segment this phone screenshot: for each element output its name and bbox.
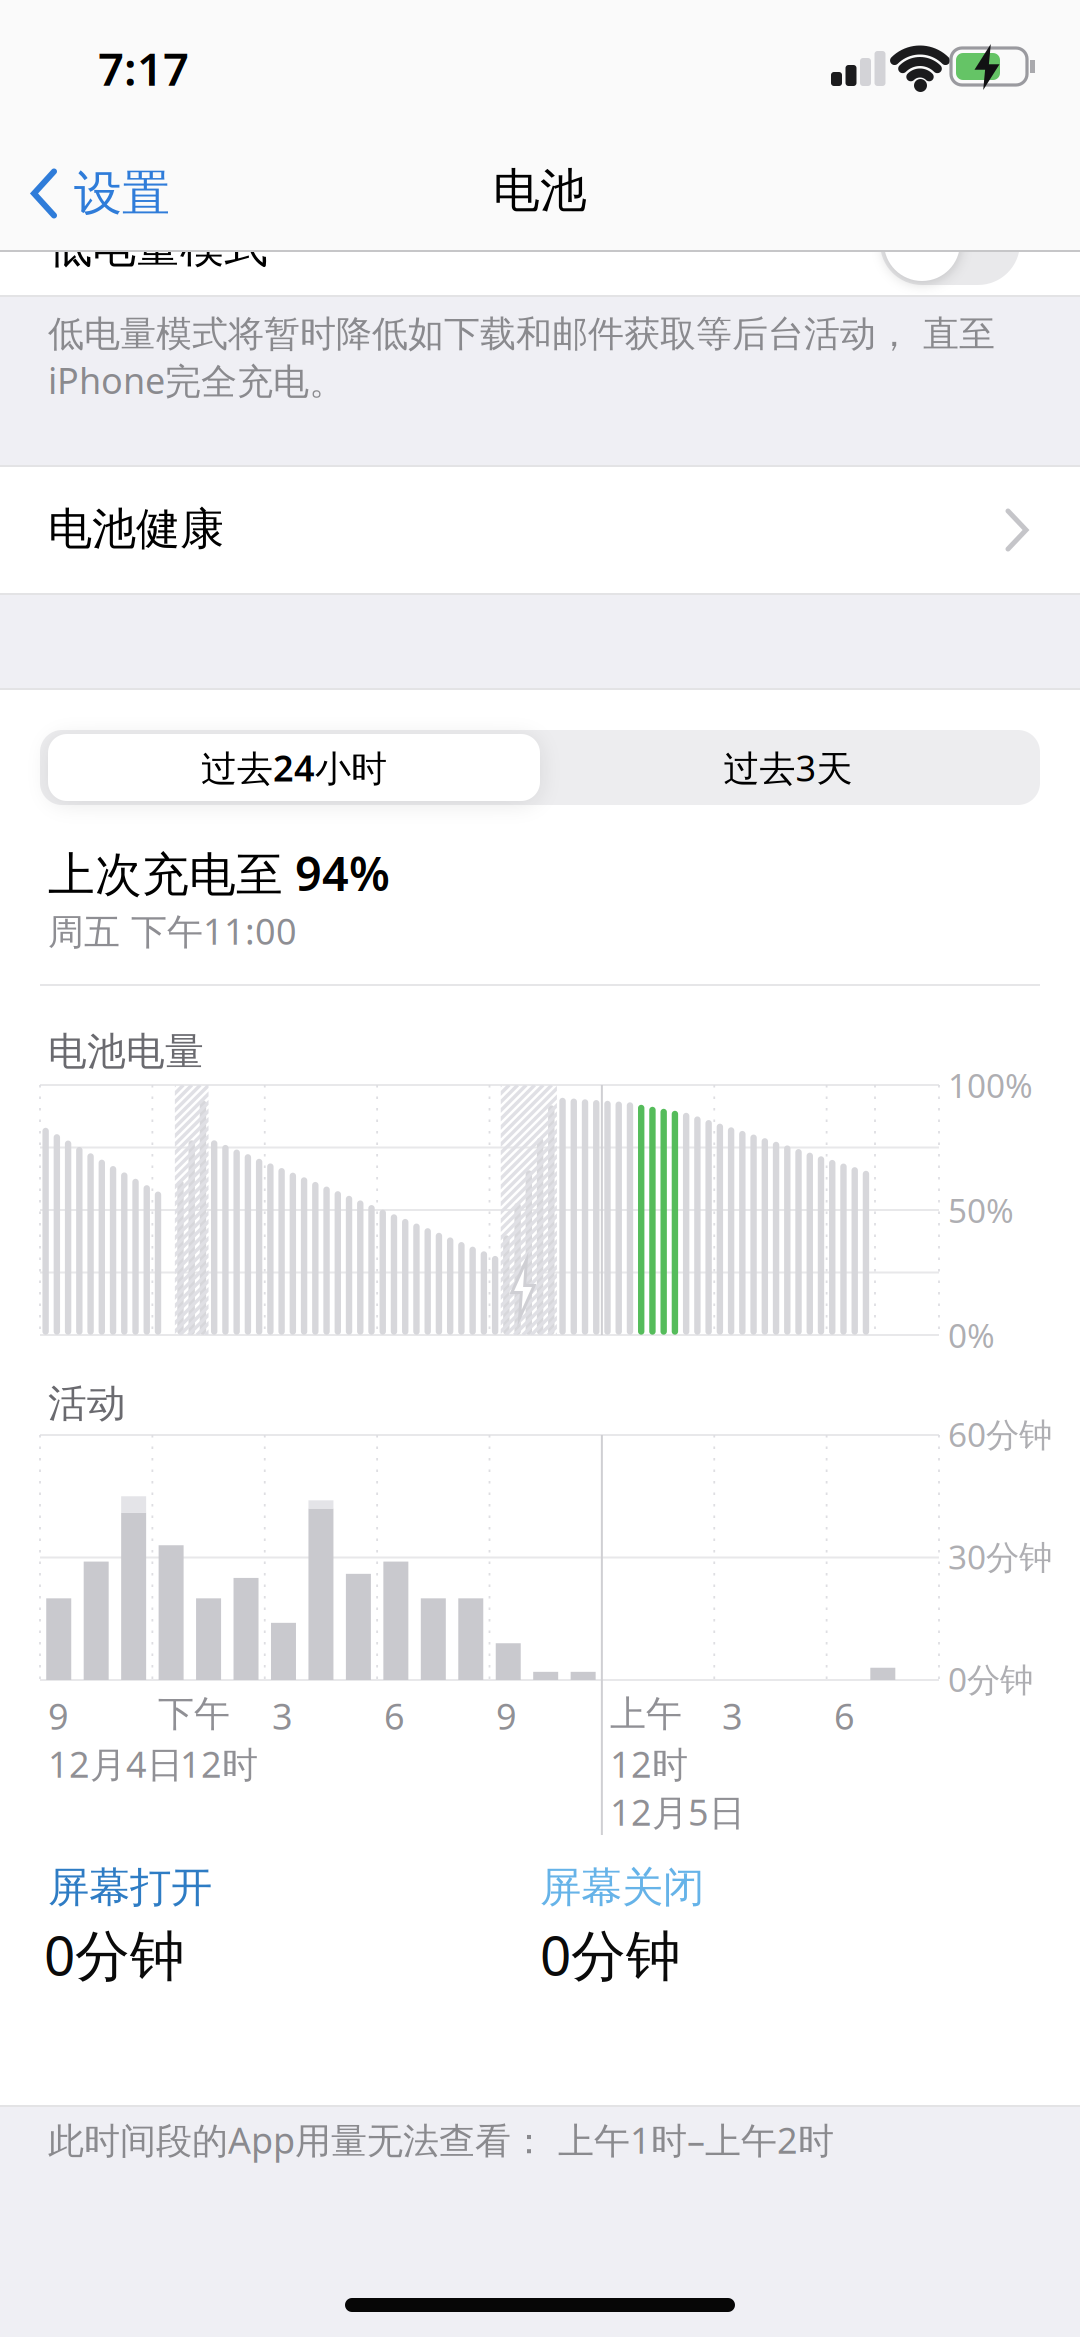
button[interactable]: 设置 (30, 164, 170, 223)
staticText: 上次充电至 94% (48, 842, 390, 904)
staticText: 电池健康 (48, 502, 224, 556)
staticText: 过去24小时 (201, 744, 387, 791)
staticText: 6 (384, 1692, 405, 1740)
staticText: 7:17 (98, 38, 189, 98)
staticText: 过去3天 (723, 744, 852, 791)
staticText: 上午 (610, 1692, 682, 1736)
button[interactable]: 电池健康 (0, 467, 1080, 593)
staticText: 低电量模式 (48, 220, 268, 274)
staticText: 此时间段的App用量无法查看： 上午1时–上午2时 (48, 2116, 834, 2164)
staticText: 0分钟 (948, 1657, 1033, 1701)
staticText: 6 (834, 1692, 855, 1740)
staticText: 12月4日 (48, 1740, 183, 1788)
staticText: 0分钟 (44, 1918, 185, 1991)
staticText: 60分钟 (948, 1412, 1052, 1456)
button[interactable]: 低电量模式 (0, 252, 1080, 295)
staticText: 0% (948, 1313, 995, 1357)
staticText: 30分钟 (948, 1534, 1052, 1579)
staticText: 3 (722, 1692, 743, 1740)
staticText: 低电量模式将暂时降低如下载和邮件获取等后台活动， 直至 iPhone完全充电。 (48, 312, 995, 404)
staticText: 屏幕打开 (48, 1862, 212, 1913)
staticText: 下午 (158, 1692, 230, 1736)
staticText: 屏幕关闭 (540, 1862, 704, 1913)
staticText: 12月5日 (610, 1788, 745, 1836)
staticText: 3 (272, 1692, 293, 1740)
staticText: 0分钟 (540, 1918, 681, 1991)
staticText: 周五 下午11:00 (48, 907, 297, 955)
staticText: 9 (496, 1692, 517, 1740)
staticText: 12时 (180, 1740, 258, 1788)
staticText: 设置 (74, 164, 170, 223)
button[interactable]: 过去3天 (540, 730, 1036, 805)
staticText: 50% (948, 1188, 1014, 1232)
staticText: 电池电量 (48, 1028, 204, 1075)
staticText: 12时 (610, 1740, 688, 1788)
button[interactable]: 过去24小时 (44, 730, 544, 805)
staticText: 活动 (48, 1380, 126, 1427)
staticText: 9 (48, 1692, 69, 1740)
staticText: 电池 (493, 162, 587, 219)
staticText: 100% (948, 1063, 1033, 1107)
